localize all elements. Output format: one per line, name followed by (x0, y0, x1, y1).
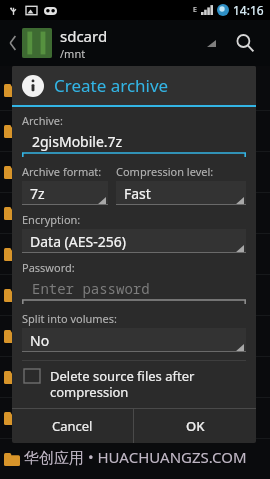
staticText: Encryption: (22, 212, 81, 227)
button[interactable]: Enter password (22, 277, 246, 304)
button[interactable]: Search (228, 23, 262, 63)
button[interactable]: Up (4, 23, 22, 63)
staticText: Enter password (32, 279, 150, 298)
button[interactable]: Cancel (12, 409, 133, 443)
staticText: /mnt (60, 46, 86, 61)
staticText: Fast (124, 184, 151, 203)
staticText: 华创应用 • HUACHUANGZS.COM (24, 447, 247, 467)
button[interactable]: OK (134, 409, 256, 443)
button[interactable]: No (22, 328, 246, 352)
button[interactable]: Data (AES-256) (22, 229, 246, 253)
staticText: 14:16 (233, 2, 264, 18)
staticText: Archive: (22, 113, 64, 128)
staticText: 7z (30, 184, 45, 203)
staticText: Split into volumes: (22, 311, 118, 326)
button[interactable]: Delete source files after compression (22, 367, 246, 400)
staticText: OK (186, 417, 205, 435)
staticText: Password: (22, 260, 75, 275)
staticText: Archive format: (22, 164, 102, 179)
button[interactable]: 7z (22, 181, 108, 205)
button[interactable]: Fast (116, 181, 246, 205)
staticText: 2gisMobile.7z (32, 132, 123, 151)
staticText: Data (AES-256) (30, 232, 126, 251)
button[interactable]: 2gisMobile.7z (22, 130, 246, 157)
staticText: Compression level: (116, 164, 214, 179)
staticText: No (30, 331, 50, 350)
button[interactable]: More options (200, 23, 222, 63)
staticText: Cancel (52, 417, 93, 435)
staticText: Delete source files after compression (50, 367, 246, 400)
staticText: Create archive (54, 74, 169, 97)
staticText: sdcard (60, 26, 108, 46)
staticText: E (193, 5, 197, 15)
